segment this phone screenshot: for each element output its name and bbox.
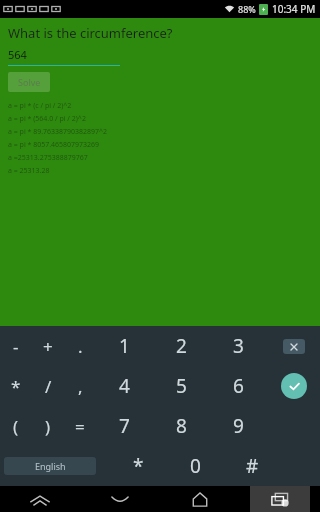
button[interactable]: *	[0, 366, 32, 406]
button[interactable]: Home	[160, 486, 240, 512]
button[interactable]: 4	[96, 366, 153, 406]
staticText: 9	[233, 413, 244, 439]
button[interactable]: 0	[167, 446, 224, 486]
staticText: 1	[119, 333, 130, 359]
staticText: English	[35, 460, 66, 472]
staticText: *	[11, 375, 21, 398]
button[interactable]: (	[0, 406, 32, 446]
button[interactable]: 9	[210, 406, 267, 446]
staticText: +	[43, 335, 53, 358]
staticText: a = pi * (c / pi / 2)^2	[8, 101, 72, 111]
button[interactable]: 7	[96, 406, 153, 446]
staticText: ,	[78, 375, 83, 398]
button[interactable]: /	[32, 366, 64, 406]
button[interactable]: Backspace	[283, 339, 305, 354]
staticText: 4	[119, 373, 130, 399]
button[interactable]: 5	[153, 366, 210, 406]
staticText: 3	[233, 333, 244, 359]
button[interactable]: Menu	[0, 486, 80, 512]
staticText: =	[75, 415, 85, 438]
button[interactable]: English	[4, 457, 96, 475]
button[interactable]: 8	[153, 406, 210, 446]
button[interactable]: 1	[96, 326, 153, 366]
staticText: 0	[190, 453, 201, 479]
button[interactable]: Solve	[8, 72, 50, 92]
staticText: .	[78, 335, 83, 358]
button[interactable]: =	[64, 406, 96, 446]
staticText: a = 25313.28	[8, 166, 50, 176]
staticText: -	[13, 335, 19, 358]
button[interactable]: Back	[80, 486, 160, 512]
staticText: a = pi * 8057.465807973269	[8, 140, 100, 150]
staticText: 6	[233, 373, 244, 399]
staticText: #	[246, 453, 259, 479]
button[interactable]: -	[0, 326, 32, 366]
staticText: a = pi * 89.76338790382897^2	[8, 127, 108, 137]
button[interactable]: 3	[210, 326, 267, 366]
button[interactable]: +	[32, 326, 64, 366]
staticText: 10:34 PM	[272, 2, 316, 16]
button[interactable]: )	[32, 406, 64, 446]
button[interactable]: #	[224, 446, 281, 486]
staticText: 564	[8, 47, 27, 62]
button[interactable]: Enter	[281, 373, 307, 399]
staticText: )	[45, 415, 51, 438]
button[interactable]: 6	[210, 366, 267, 406]
button[interactable]: ,	[64, 366, 96, 406]
staticText: Solve	[18, 76, 41, 88]
staticText: *	[133, 453, 144, 479]
button[interactable]: .	[64, 326, 96, 366]
staticText: 88%	[238, 3, 256, 15]
staticText: /	[45, 375, 52, 398]
staticText: 5	[176, 373, 187, 399]
staticText: a = pi * (564.0 / pi / 2)^2	[8, 114, 86, 124]
button[interactable]: 2	[153, 326, 210, 366]
staticText: (	[13, 415, 19, 438]
staticText: 2	[176, 333, 187, 359]
staticText: a =25313.275388879767	[8, 153, 88, 163]
button[interactable]: Recent apps	[240, 486, 320, 512]
button[interactable]: *	[110, 446, 167, 486]
staticText: 7	[119, 413, 130, 439]
staticText: What is the circumference?	[8, 24, 173, 42]
staticText: 8	[176, 413, 187, 439]
